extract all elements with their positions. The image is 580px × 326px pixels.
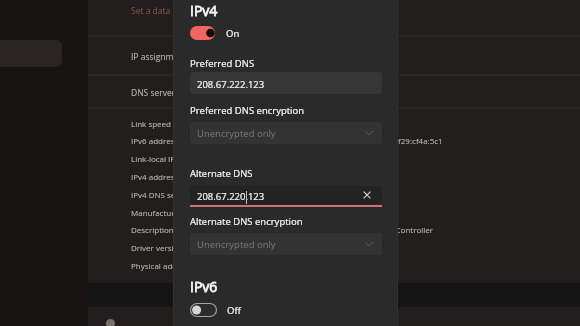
staticText: DNS server assignment (131, 87, 224, 99)
button[interactable]: On (190, 26, 240, 40)
staticText: IPv4 DNS servers (131, 189, 195, 200)
staticText: 2601:647:4d00:3e1a:7c9d:f29:cf4a:5c1 (301, 135, 443, 146)
staticText: Intel(R) Ethernet Connection I219-V Cont… (263, 224, 434, 235)
staticText: Preferred DNS encryption (190, 104, 305, 117)
staticText: Off (227, 304, 241, 317)
staticText: Physical address (MAC) (131, 260, 217, 271)
button[interactable]: Off (190, 303, 241, 317)
button[interactable]: 208.67.222.123 (190, 72, 382, 94)
button[interactable]: Unencrypted only (190, 122, 382, 144)
staticText: IPv4 (190, 1, 218, 20)
staticText: 208.67.222.123 (197, 78, 265, 91)
staticText: Driver version (131, 242, 184, 253)
button[interactable]: 208.67.220.123 (190, 186, 382, 204)
staticText: IP assignment (131, 51, 187, 63)
staticText: Alternate DNS (190, 167, 253, 180)
staticText: Link speed (Receive/Transmit) (131, 118, 243, 129)
button[interactable]: Unencrypted only (190, 233, 382, 255)
staticText: IPv4 address (131, 171, 179, 182)
staticText: Manufacturer (131, 207, 183, 218)
staticText: IPv6 (190, 277, 218, 296)
staticText: Unencrypted only (197, 127, 276, 140)
staticText: Description (131, 224, 174, 235)
staticText: Link-local IPv6 address (131, 153, 216, 164)
staticText: Preferred DNS (190, 57, 255, 70)
staticText: On (226, 27, 240, 40)
button[interactable]: Clear text (361, 189, 373, 201)
staticText: Alternate DNS encryption (190, 215, 303, 228)
staticText: 208.67.220.123 (197, 190, 265, 203)
staticText: IPv6 address (131, 135, 179, 146)
staticText: Unencrypted only (197, 238, 276, 251)
staticText: Set a data limit to help control data us… (131, 5, 296, 17)
